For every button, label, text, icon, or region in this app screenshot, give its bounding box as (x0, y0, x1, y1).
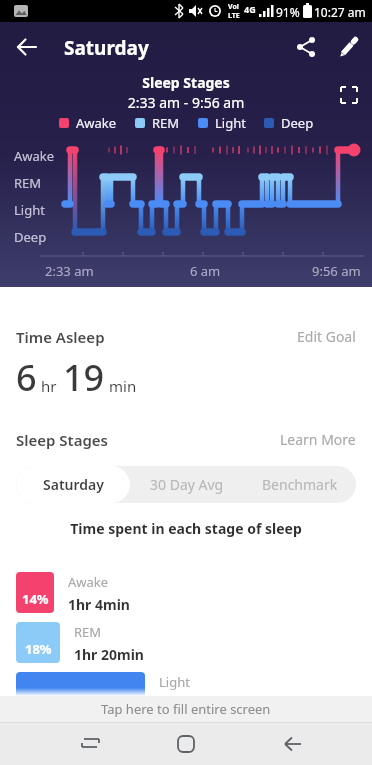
button[interactable] (340, 86, 358, 104)
staticText: 6 am (190, 262, 221, 280)
staticText: Tap here to fill entire screen (101, 700, 271, 718)
staticText: 10:27 am (314, 4, 366, 20)
staticText: 18% (25, 640, 52, 658)
staticText: Sleep Stages (16, 430, 109, 450)
button[interactable] (80, 734, 102, 754)
staticText: min (109, 376, 137, 396)
staticText: 4G (244, 3, 256, 15)
staticText: Light (159, 673, 190, 691)
button[interactable] (176, 734, 196, 754)
staticText: 19 (63, 353, 105, 402)
staticText: Awake (76, 114, 117, 132)
staticText: Saturday (64, 35, 149, 61)
staticText: Learn More (280, 430, 356, 449)
staticText: REM (74, 623, 102, 641)
staticText: Time Asleep (16, 327, 105, 347)
staticText: Saturday (43, 475, 104, 494)
staticText: Awake (68, 573, 109, 591)
button[interactable] (337, 35, 361, 59)
staticText: Awake (14, 147, 55, 165)
staticText: LTE (228, 11, 240, 21)
button[interactable]: Learn More (280, 430, 356, 449)
button[interactable] (10, 32, 44, 62)
staticText: Light (14, 201, 45, 219)
staticText: Edit Goal (297, 327, 356, 346)
staticText: Deep (14, 228, 47, 246)
staticText: Sleep Stages (0, 73, 372, 92)
staticText: REM (152, 114, 180, 132)
staticText: Time spent in each stage of sleep (0, 519, 372, 538)
staticText: 2:33 am (45, 262, 94, 280)
button[interactable]: Tap here to fill entire screen (0, 696, 372, 722)
button[interactable]: 30 Day Avg (130, 466, 243, 503)
staticText: Light (215, 114, 246, 132)
staticText: Vol (228, 2, 239, 12)
staticText: REM (14, 174, 42, 192)
button[interactable]: Saturday (16, 466, 130, 503)
button[interactable] (294, 35, 318, 59)
staticText: Benchmark (262, 475, 338, 494)
staticText: Deep (281, 114, 314, 132)
staticText: 30 Day Avg (150, 475, 224, 494)
staticText: hr (41, 376, 57, 396)
staticText: 6 (16, 353, 37, 402)
staticText: 1hr 20min (74, 645, 144, 664)
staticText: 2:33 am - 9:56 am (0, 93, 372, 112)
staticText: 14% (22, 590, 49, 608)
button[interactable]: Edit Goal (297, 327, 356, 346)
staticText: 1hr 4min (68, 595, 130, 614)
button[interactable]: Benchmark (243, 466, 356, 503)
staticText: 9:56 am (312, 262, 361, 280)
staticText: 91% (276, 4, 300, 20)
button[interactable] (282, 734, 304, 754)
